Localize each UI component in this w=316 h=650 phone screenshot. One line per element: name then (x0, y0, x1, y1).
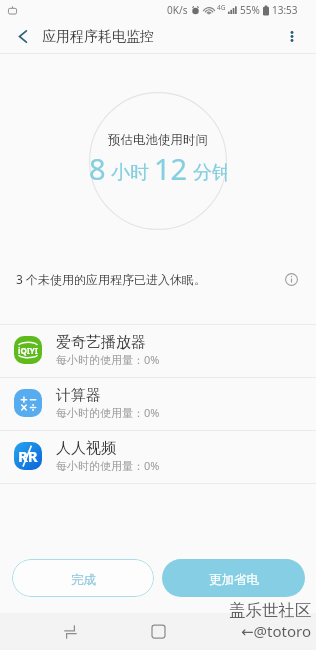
staticText: 应用程序耗电监控 (42, 28, 154, 46)
staticText: 小时 (106, 159, 154, 185)
button[interactable]: 更加省电 (162, 559, 305, 597)
staticText: 每小时的使用量：0% (56, 352, 160, 367)
button[interactable]: More options (275, 20, 308, 53)
staticText: 人人视频 (56, 439, 116, 458)
staticText: RR (18, 446, 38, 466)
staticText: 0K/s (167, 3, 188, 17)
staticText: 每小时的使用量：0% (56, 458, 160, 473)
staticText: 每小时的使用量：0% (56, 405, 160, 420)
staticText: ←@totoro (241, 621, 312, 641)
staticText: 计算器 (56, 386, 101, 405)
staticText: 爱奇艺播放器 (56, 333, 146, 352)
staticText: 分钟 (188, 159, 227, 185)
button[interactable]: 完成 (12, 559, 154, 597)
button[interactable]: Back (4, 20, 41, 53)
button[interactable]: RR (0, 431, 316, 483)
button[interactable]: Recents (51, 613, 89, 650)
staticText: 完成 (71, 572, 96, 588)
button[interactable]: Back (228, 613, 266, 650)
staticText: 12 (154, 149, 188, 188)
staticText: iQIYI (18, 345, 38, 356)
staticText: 预估电池使用时间 (108, 132, 208, 148)
staticText: 更加省电 (209, 572, 259, 588)
button[interactable]: 计算器 (0, 378, 316, 430)
staticText: 55% (240, 3, 260, 17)
button[interactable]: iQIYI (0, 325, 316, 377)
staticText: 3 个未使用的应用程序已进入休眠。 (16, 271, 206, 287)
staticText: 盖乐世社区 (229, 600, 312, 621)
staticText: 8 (89, 149, 106, 188)
button[interactable]: Home (139, 613, 177, 650)
button[interactable]: Info (276, 264, 306, 294)
staticText: 4G (217, 3, 226, 12)
staticText: 13:53 (272, 3, 298, 17)
